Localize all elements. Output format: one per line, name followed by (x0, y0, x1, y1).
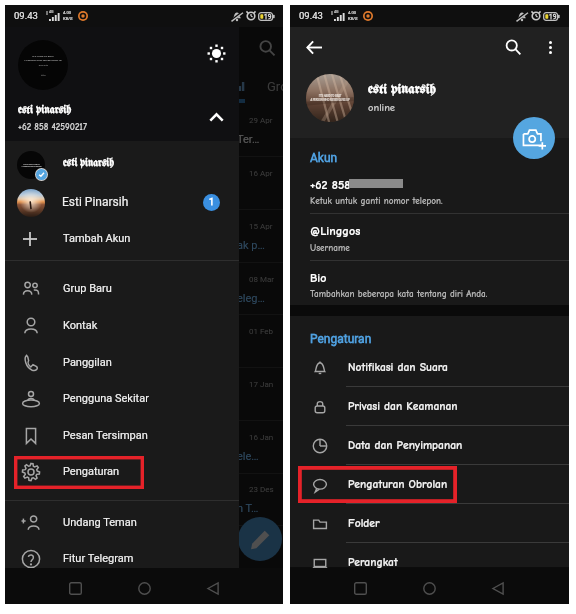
staticText: IT'S HARD TO BEAT A PERSON WHO NEVER GIV… (24, 55, 62, 62)
staticText: 01 Feb (249, 327, 274, 336)
staticText: 08 Mar (249, 275, 275, 284)
staticText: 4.00 (63, 10, 72, 15)
staticText: KB/S (63, 16, 73, 21)
staticText: Pengaturan Obrolan (348, 478, 448, 491)
staticText: 4G (334, 10, 339, 14)
staticText: 16 Apr (249, 169, 273, 178)
staticText: 15 Apr (249, 222, 273, 231)
staticText: - Babe Ruth (38, 64, 49, 66)
button[interactable]: Grup Baru (5, 271, 239, 307)
button[interactable]: Bio (290, 266, 569, 305)
staticText: +62 858 (310, 178, 351, 192)
staticText: 23 Des (249, 485, 274, 494)
staticText: @Linggos (310, 224, 361, 238)
button[interactable]: @Linggos (290, 219, 569, 261)
staticText: esti pinarsih (368, 82, 436, 96)
staticText: Folder (348, 517, 380, 530)
staticText: Akun (310, 151, 338, 165)
staticText: Privasi dan Keamanan (348, 400, 458, 413)
button[interactable]: Privasi dan Keamanan (290, 387, 569, 426)
staticText: Bio (310, 271, 327, 285)
staticText: 4.00 (348, 10, 357, 15)
button[interactable]: +62 858 (290, 173, 569, 213)
staticText: Perangkat (348, 556, 398, 569)
button[interactable]: Set profile photo (513, 117, 555, 159)
staticText: eleg… (237, 292, 265, 305)
button[interactable]: Home (414, 573, 444, 603)
button[interactable]: Recent apps (60, 573, 90, 603)
staticText: Grup Baru (63, 282, 112, 295)
staticText: 29 Apr (249, 116, 273, 125)
staticText: IT'S HARD TO BEAT A PERSON WHO NEVER GIV… (310, 95, 350, 102)
staticText: online (368, 102, 396, 114)
button[interactable]: Fitur Telegram (5, 541, 239, 577)
button[interactable]: Search (499, 33, 527, 61)
button[interactable]: Data dan Penyimpanan (290, 426, 569, 465)
staticText: Username (310, 243, 350, 254)
staticText: n T… (237, 502, 259, 515)
staticText: Panggilan (63, 356, 112, 369)
staticText: Ketuk untuk ganti nomor telepon. (310, 196, 443, 207)
staticText: 19 (549, 13, 557, 21)
staticText: @fbq (41, 74, 46, 76)
button[interactable]: Back (300, 33, 328, 61)
button[interactable]: Panggilan (5, 345, 239, 381)
button[interactable]: Kontak (5, 308, 239, 344)
button[interactable]: Pengguna Sekitar (5, 381, 239, 417)
staticText: 19 (264, 13, 272, 21)
staticText: 4G (49, 10, 54, 14)
button[interactable]: Tambah Akun (5, 221, 239, 257)
staticText: Undang Teman (63, 516, 137, 529)
staticText: esti pinarsih (63, 158, 114, 169)
staticText: Pengaturan (310, 332, 372, 346)
button[interactable]: Collapse account list (201, 102, 231, 132)
button[interactable]: Pesan Tersimpan (5, 418, 239, 454)
button[interactable]: Undang Teman (5, 505, 239, 541)
staticText: +62 858 42590217 (18, 122, 87, 132)
button[interactable]: More options (536, 33, 564, 61)
staticText: Esti Pinarsih (62, 195, 129, 209)
staticText: Tambahkan beberapa kata tentang diri And… (310, 289, 488, 300)
button[interactable]: Back (483, 573, 513, 603)
staticText: 16 Jan (249, 433, 274, 442)
button[interactable]: Pengaturan (5, 454, 239, 490)
button[interactable]: Pengaturan Obrolan (290, 465, 569, 504)
staticText: Fitur Telegram (63, 552, 134, 565)
staticText: Pesan Tersimpan (63, 429, 148, 442)
staticText: esti pinarsih (18, 104, 72, 115)
button[interactable]: Toggle night mode (201, 38, 231, 68)
button[interactable]: Perangkat (290, 543, 569, 582)
button[interactable]: Recent apps (345, 573, 375, 603)
staticText: Gro (267, 79, 283, 94)
button[interactable]: Notifikasi dan Suara (290, 348, 569, 387)
staticText: Ter… (237, 133, 260, 146)
staticText: Kontak (63, 319, 98, 332)
staticText: ele… (237, 450, 259, 463)
button[interactable]: Back (198, 573, 228, 603)
staticText: 17 Jan (249, 380, 274, 389)
staticText: Pengaturan (63, 465, 120, 478)
button[interactable]: Home (129, 573, 159, 603)
staticText: ak p… (237, 239, 265, 252)
button[interactable]: IT'S HARD TO BEAT A PERSON WHO NEVER (5, 147, 239, 183)
staticText: Data dan Penyimpanan (348, 439, 463, 452)
button[interactable]: Folder (290, 504, 569, 543)
staticText: Tambah Akun (63, 232, 131, 245)
button[interactable]: Esti Pinarsih (5, 184, 239, 221)
staticText: 09.43 (299, 10, 323, 21)
staticText: 09.43 (14, 10, 38, 21)
staticText: IT'S HARD TO BEAT A PERSON WHO NEVER (21, 163, 42, 168)
staticText: Pengguna Sekitar (63, 392, 149, 405)
staticText: 1 (209, 197, 215, 208)
staticText: KB/S (348, 16, 358, 21)
staticText: Notifikasi dan Suara (348, 361, 448, 374)
